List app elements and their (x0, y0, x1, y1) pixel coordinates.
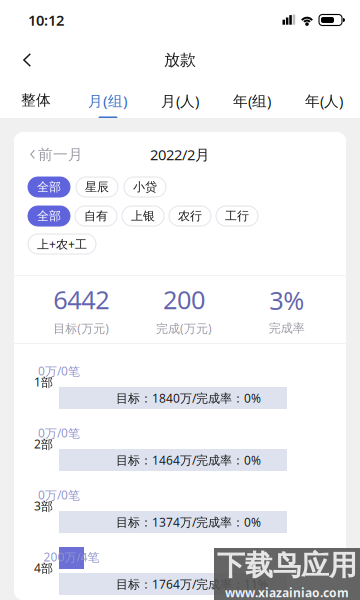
staticText: www.xiazainiao.com (225, 585, 349, 600)
staticText: 完成(万元) (156, 320, 212, 336)
staticText: 3部 (34, 498, 53, 514)
staticText: 200 (163, 283, 205, 316)
staticText: 1部 (34, 374, 53, 390)
button[interactable]: 月(组) (72, 80, 144, 118)
button[interactable]: 返回 (12, 44, 43, 76)
staticText: 0万/0笔 (38, 487, 80, 503)
button[interactable]: 小贷 (124, 177, 166, 197)
staticText: 星辰 (85, 180, 109, 194)
staticText: 0万/0笔 (38, 363, 80, 379)
staticText: 4部 (34, 560, 53, 576)
button[interactable]: 星辰 (76, 177, 118, 197)
staticText: 2022/2月 (150, 145, 210, 164)
staticText: 上银 (131, 209, 155, 223)
button[interactable]: 上+农+工 (28, 234, 96, 254)
staticText: 月(组) (88, 91, 128, 110)
button[interactable]: 前一月 (30, 145, 83, 163)
button[interactable]: 整体 (0, 80, 72, 118)
staticText: 6442 (53, 283, 109, 316)
staticText: 工行 (225, 209, 249, 223)
staticText: 完成率 (269, 321, 305, 336)
button[interactable]: 自有 (75, 206, 117, 226)
button[interactable]: 月(人) (144, 80, 216, 118)
button[interactable]: 上银 (122, 206, 164, 226)
staticText: 0万/0笔 (38, 425, 80, 441)
staticText: 下载鸟应用 (217, 548, 357, 583)
staticText: 10:12 (28, 10, 64, 30)
staticText: 上+农+工 (37, 236, 87, 252)
staticText: 放款 (164, 50, 196, 70)
staticText: 目标(万元) (53, 320, 109, 336)
staticText: 整体 (21, 91, 51, 109)
button[interactable]: 全部 (28, 206, 70, 226)
staticText: 年(人) (305, 91, 343, 110)
staticText: 全部 (37, 209, 61, 223)
staticText: 前一月 (38, 145, 83, 163)
staticText: 全部 (37, 180, 61, 194)
button[interactable]: 年(组) (216, 80, 288, 118)
button[interactable]: 农行 (169, 206, 211, 226)
button[interactable]: 年(人) (288, 80, 360, 118)
staticText: 目标：1764万/完成率：11% (116, 576, 268, 592)
staticText: 3% (269, 283, 304, 317)
staticText: 200万/4笔 (43, 549, 99, 565)
staticText: 目标：1840万/完成率：0% (116, 390, 261, 406)
staticText: 小贷 (133, 180, 157, 194)
staticText: 2部 (34, 436, 53, 452)
staticText: 目标：1374万/完成率：0% (116, 514, 261, 530)
staticText: 自有 (84, 209, 108, 223)
staticText: 年(组) (233, 91, 271, 110)
staticText: 目标：1464万/完成率：0% (116, 452, 261, 468)
button[interactable]: 全部 (28, 177, 70, 197)
staticText: 月(人) (161, 91, 199, 110)
staticText: 农行 (178, 209, 202, 223)
button[interactable]: 工行 (216, 206, 258, 226)
